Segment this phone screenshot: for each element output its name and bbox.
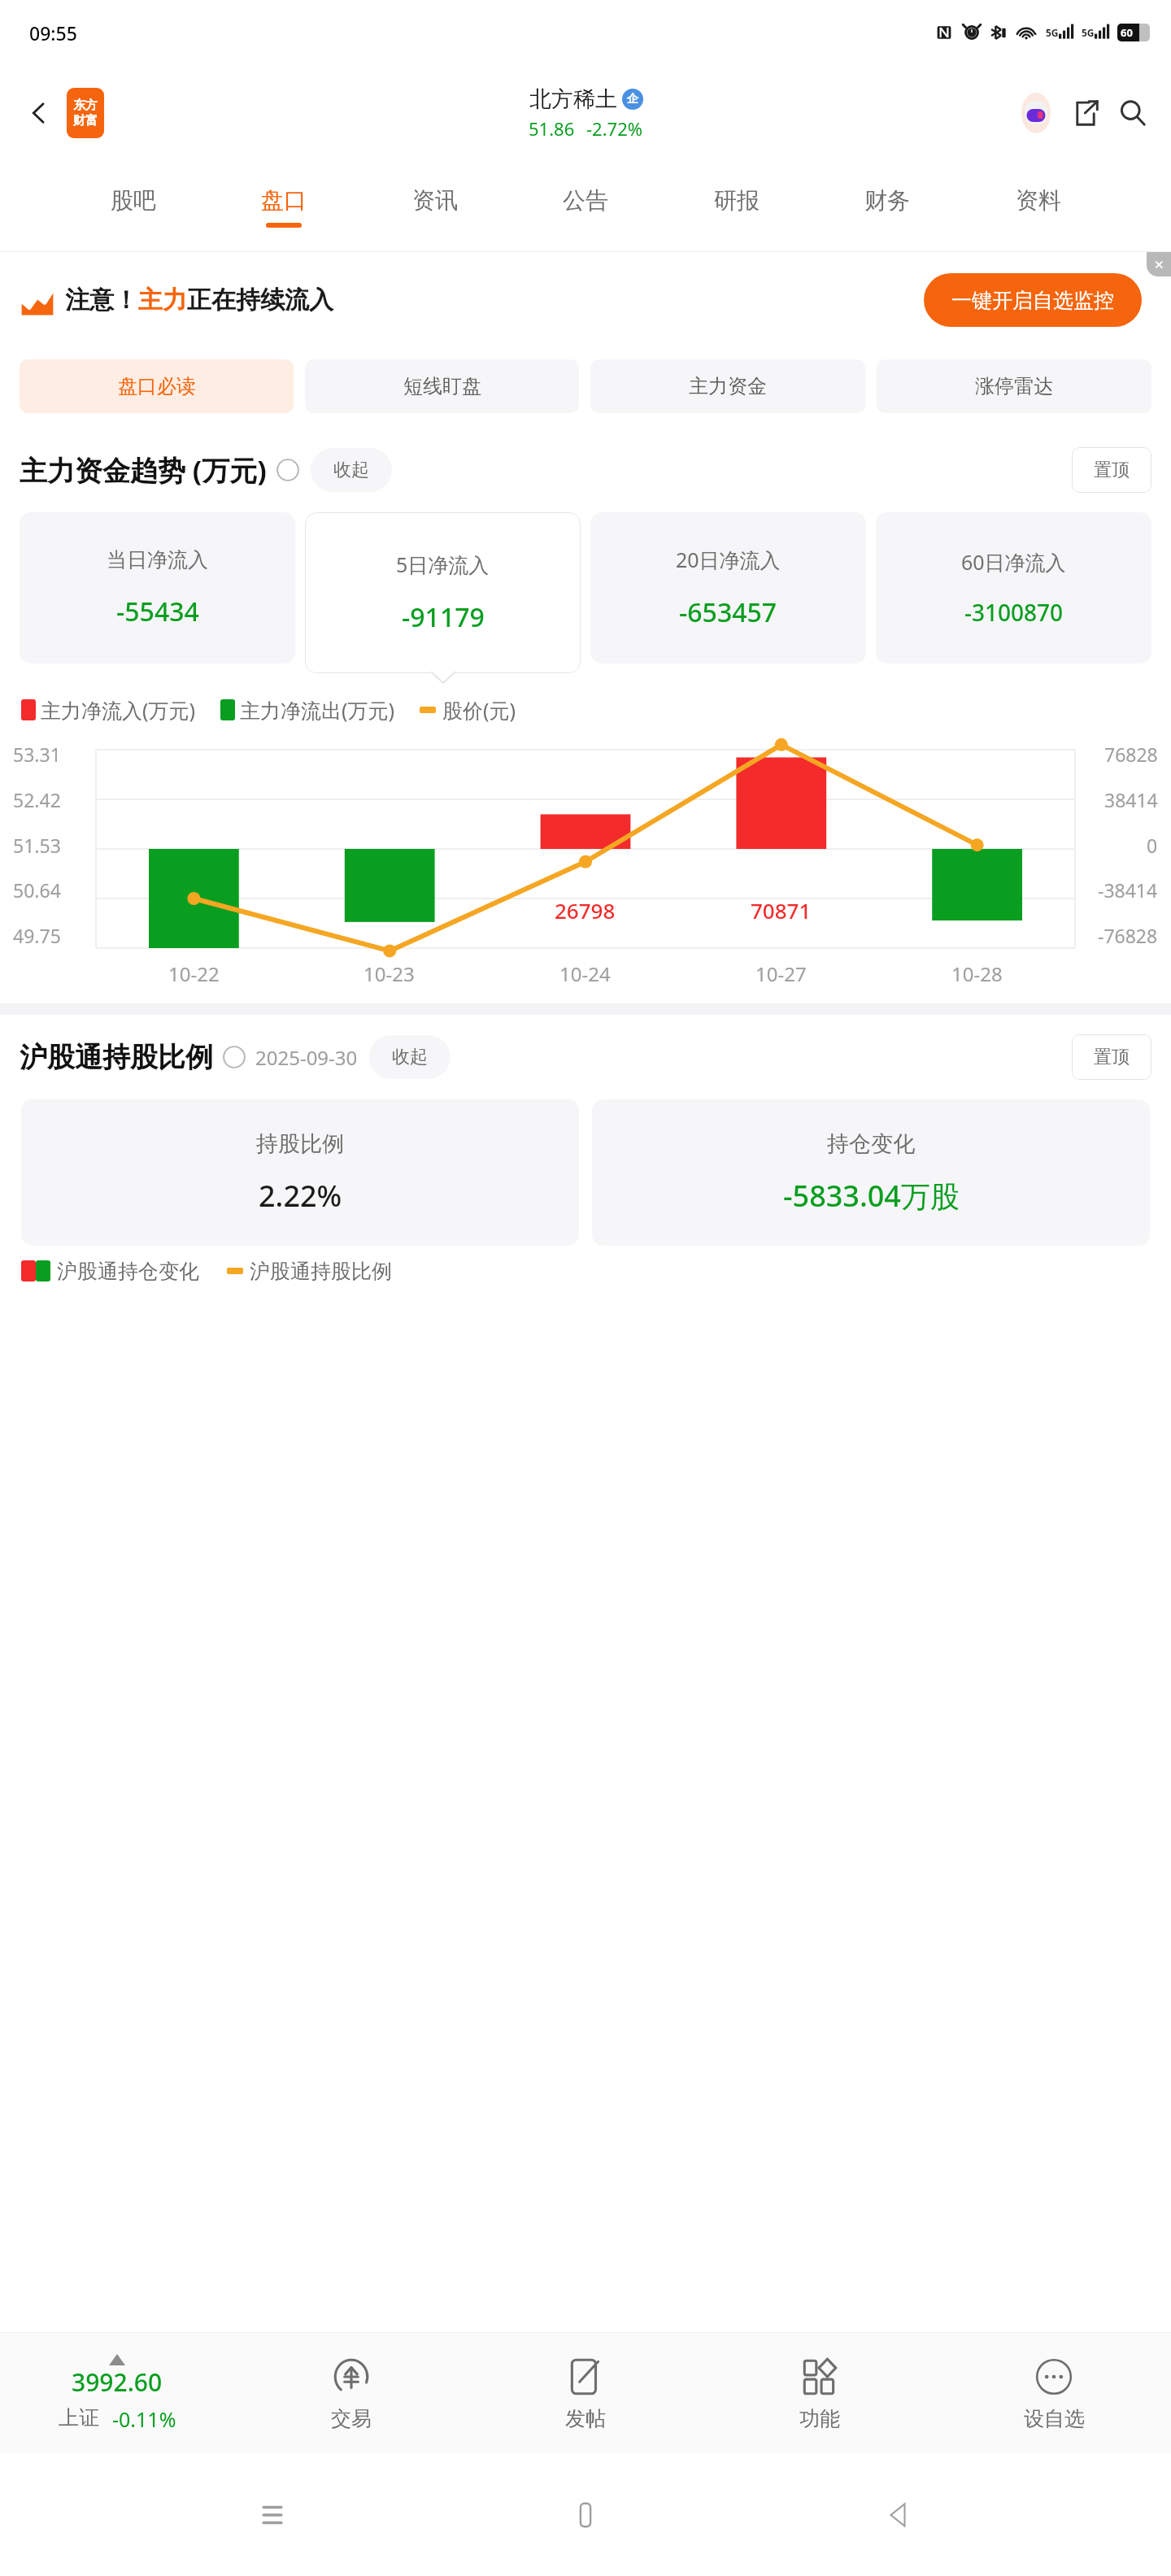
staticText: 收起 (392, 1046, 428, 1068)
button[interactable]: 当日净流入 (20, 512, 295, 683)
staticText: 持股比例 (256, 1130, 344, 1158)
staticText: 持仓变化 (827, 1130, 915, 1158)
button[interactable]: 北方稀土 (529, 85, 643, 141)
button[interactable]: 盘口必读 (20, 359, 294, 413)
staticText: -55434 (116, 594, 199, 629)
button[interactable]: 公告 (558, 183, 613, 231)
staticText: 49.75 (13, 923, 61, 948)
button[interactable]: 置顶 (1072, 447, 1151, 493)
button[interactable]: 短线盯盘 (305, 359, 579, 413)
staticText: 51.53 (13, 833, 61, 858)
button[interactable]: 发帖 (468, 2332, 703, 2454)
staticText: -653457 (679, 594, 777, 630)
staticText: 交易 (331, 2406, 372, 2431)
staticText: 股吧 (111, 186, 156, 215)
staticText: 正在持续流入 (187, 285, 333, 315)
staticText: 51.86 (529, 116, 575, 141)
button[interactable]: 20日净流入 (590, 512, 866, 683)
button[interactable]: Close (1147, 252, 1171, 276)
button[interactable]: 涨停雷达 (877, 359, 1151, 413)
button[interactable]: 持股比例 (21, 1099, 579, 1246)
staticText: 东方 (73, 98, 98, 113)
staticText: 52.42 (13, 787, 61, 812)
staticText: 涨停雷达 (975, 374, 1053, 398)
button[interactable]: Assistant (1013, 90, 1059, 136)
button[interactable]: 一键开启自选监控 (924, 273, 1142, 327)
button[interactable]: 盘口 (256, 183, 311, 231)
staticText: 注意！ (65, 285, 138, 315)
staticText: 置顶 (1094, 1046, 1130, 1068)
button[interactable]: 交易 (234, 2332, 468, 2454)
staticText: 资料 (1016, 186, 1061, 215)
button[interactable]: 收起 (311, 448, 392, 492)
button[interactable]: 股吧 (106, 183, 161, 231)
staticText: -2.72% (586, 116, 643, 141)
button[interactable]: 设自选 (937, 2332, 1171, 2454)
staticText: 09:55 (29, 20, 77, 46)
button[interactable]: 财务 (860, 183, 915, 231)
staticText: 10-27 (755, 960, 807, 987)
staticText: 主力 (138, 285, 187, 315)
staticText: 38414 (1104, 787, 1158, 812)
button[interactable]: Back (16, 90, 62, 136)
staticText: -5833.04万股 (783, 1176, 960, 1216)
staticText: -38414 (1098, 877, 1158, 903)
staticText: 收起 (333, 459, 369, 481)
button[interactable]: 收起 (369, 1035, 451, 1079)
staticText: 60日净流入 (961, 548, 1066, 576)
staticText: 主力净流出(万元) (240, 696, 395, 724)
button[interactable]: Share (1062, 89, 1109, 137)
staticText: 10-22 (168, 960, 220, 987)
button[interactable]: 主力资金 (590, 359, 865, 413)
staticText: -91179 (402, 599, 485, 635)
staticText: 资讯 (412, 186, 458, 215)
button[interactable]: 功能 (703, 2332, 937, 2454)
staticText: 主力净流入(万元) (41, 696, 196, 724)
staticText: -76828 (1098, 923, 1158, 948)
staticText: 沪股通持仓变化 (57, 1259, 199, 1284)
staticText: 主力资金趋势 (万元) (20, 451, 267, 489)
staticText: 2025-09-30 (255, 1044, 358, 1071)
staticText: -3100870 (964, 597, 1064, 628)
button[interactable]: Search (1109, 89, 1156, 137)
button[interactable]: 持仓变化 (592, 1099, 1150, 1246)
staticText: 盘口 (261, 186, 307, 215)
staticText: 财务 (864, 186, 910, 215)
staticText: 短线盯盘 (403, 374, 481, 398)
staticText: 5G (1082, 26, 1095, 39)
staticText: 设自选 (1024, 2406, 1085, 2431)
button[interactable]: 资料 (1011, 183, 1066, 231)
staticText: 20日净流入 (676, 546, 781, 573)
button[interactable]: 置顶 (1072, 1034, 1151, 1080)
staticText: 沪股通持股比例 (20, 1040, 213, 1075)
staticText: 股价(元) (442, 696, 516, 724)
staticText: 60 (1121, 25, 1133, 40)
button[interactable]: 资讯 (407, 183, 463, 231)
staticText: 北方稀土 (529, 85, 617, 113)
staticText: 研报 (714, 186, 760, 215)
button[interactable]: 5日净流入 (305, 512, 581, 683)
staticText: 功能 (799, 2406, 840, 2431)
button[interactable]: East Money (67, 88, 104, 138)
button[interactable]: 3992.60 (0, 2354, 234, 2433)
button[interactable]: 研报 (709, 183, 764, 231)
staticText: 2.22% (259, 1176, 342, 1216)
staticText: ✕ (1154, 258, 1164, 272)
staticText: 当日净流入 (107, 547, 208, 572)
staticText: 26798 (555, 896, 616, 925)
staticText: 5日净流入 (396, 550, 490, 578)
staticText: 53.31 (13, 742, 61, 767)
staticText: 上证 (59, 2405, 99, 2430)
staticText: 10-24 (559, 960, 611, 987)
button[interactable]: 60日净流入 (876, 512, 1151, 683)
staticText: 企 (627, 92, 638, 107)
staticText: 沪股通持股比例 (250, 1259, 392, 1284)
staticText: 财富 (73, 113, 98, 128)
button[interactable]: Back (858, 2474, 939, 2556)
staticText: -0.11% (112, 2405, 176, 2433)
staticText: 50.64 (13, 877, 61, 903)
button[interactable]: Home (545, 2474, 626, 2556)
button[interactable]: Recents (232, 2474, 313, 2556)
